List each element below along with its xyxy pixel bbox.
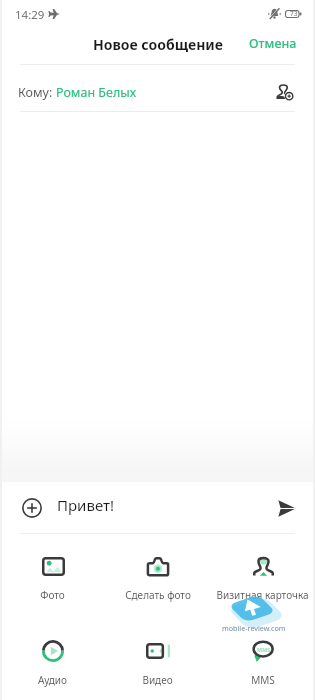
- button[interactable]: Аудио: [0, 639, 105, 687]
- button[interactable]: Сделать фото: [105, 554, 210, 602]
- staticText: 73: [290, 9, 298, 18]
- staticText: MMS: [251, 673, 275, 687]
- button[interactable]: Add attachment: [19, 495, 45, 521]
- button[interactable]: Add recipient: [271, 78, 299, 106]
- staticText: Сделать фото: [125, 588, 191, 602]
- staticText: Роман Белых: [56, 84, 137, 101]
- button[interactable]: Отмена: [231, 27, 315, 60]
- button[interactable]: Send: [274, 495, 300, 521]
- button[interactable]: Кому:: [0, 69, 315, 115]
- staticText: Отмена: [249, 35, 297, 52]
- staticText: Фото: [40, 588, 65, 602]
- staticText: Привет!: [57, 495, 115, 515]
- staticText: Новое сообщение: [93, 35, 223, 54]
- staticText: MMS: [257, 646, 271, 653]
- staticText: Визитная карточка: [216, 588, 309, 602]
- staticText: Кому:: [18, 84, 56, 101]
- staticText: Видео: [142, 673, 173, 687]
- staticText: 14:29: [15, 7, 45, 23]
- button[interactable]: Фото: [0, 554, 105, 602]
- staticText: mobile-review.com: [222, 623, 286, 633]
- staticText: Аудио: [38, 673, 67, 687]
- button[interactable]: Видео: [105, 639, 210, 687]
- button[interactable]: Визитная карточка: [210, 554, 315, 602]
- button[interactable]: MMS: [210, 639, 315, 687]
